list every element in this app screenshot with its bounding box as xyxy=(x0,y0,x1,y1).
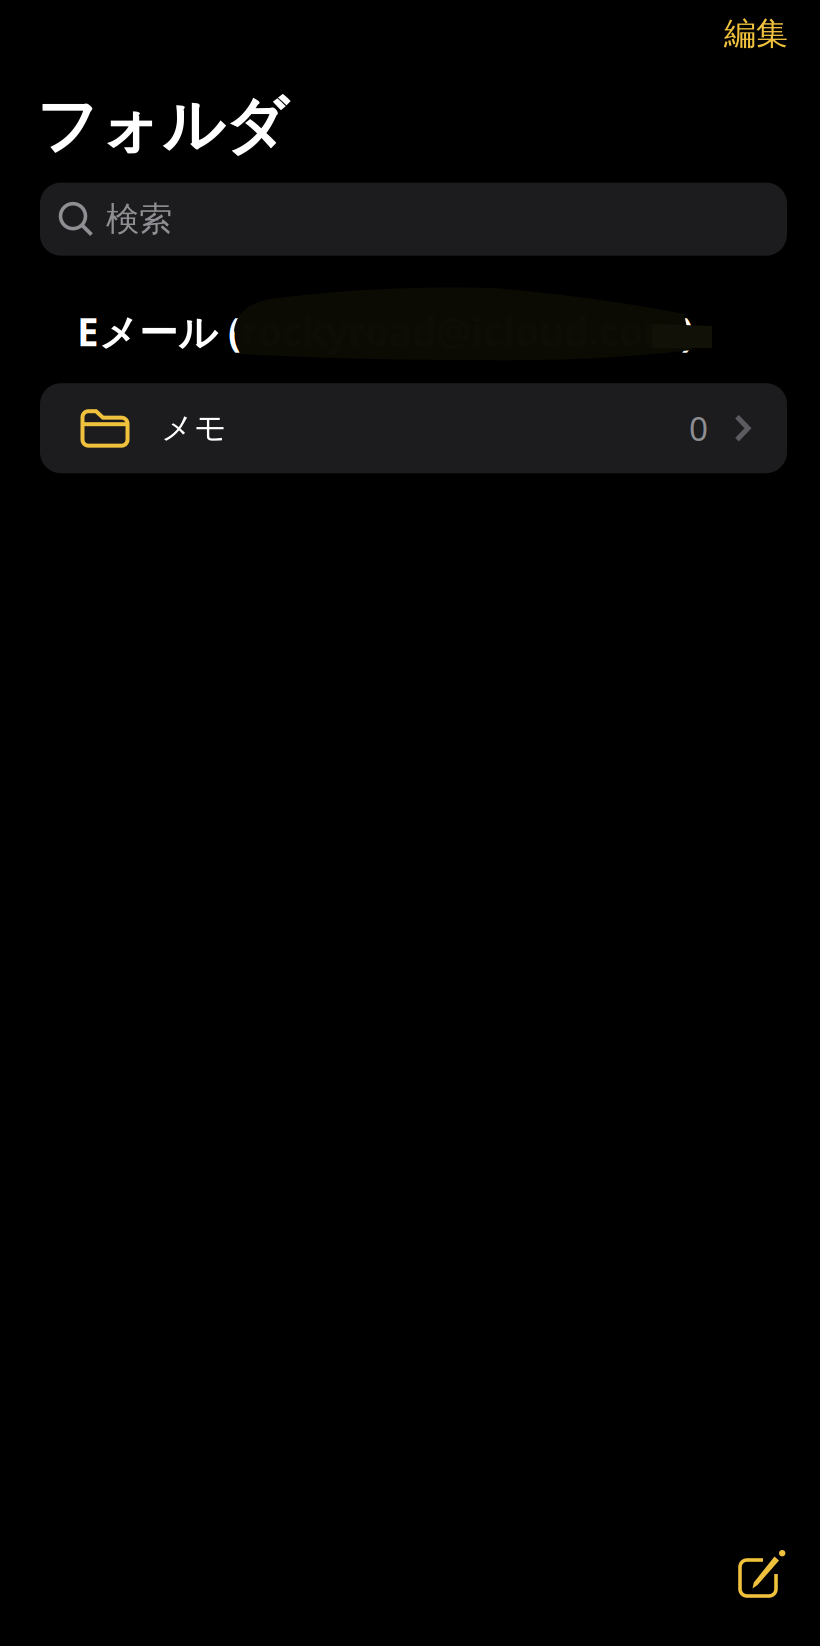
button[interactable]: 編集 xyxy=(708,5,804,62)
staticText: 編集 xyxy=(724,14,788,53)
staticText: メモ xyxy=(161,408,227,448)
staticText: Eメール (rockyroad@icloud.com) xyxy=(77,306,694,357)
button[interactable]: New Note xyxy=(726,1535,802,1615)
staticText: 検索 xyxy=(106,199,172,240)
staticText: フォルダ xyxy=(36,88,288,164)
staticText: 0 xyxy=(689,406,708,450)
button[interactable]: メモ xyxy=(40,383,787,473)
